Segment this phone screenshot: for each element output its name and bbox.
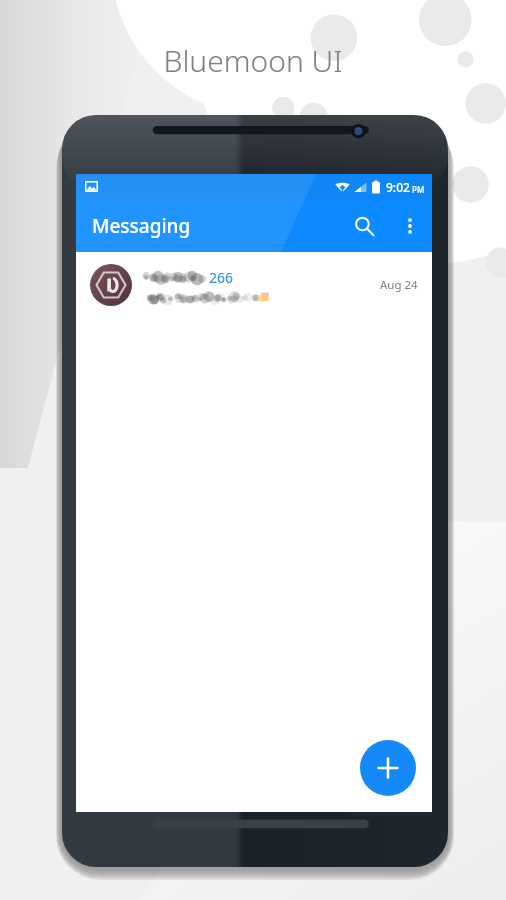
staticText: PM <box>412 184 425 195</box>
button[interactable]: More options <box>388 204 432 248</box>
staticText: Messaging <box>92 213 191 239</box>
staticText: 266 <box>209 268 234 287</box>
button[interactable]: Search <box>340 202 388 250</box>
staticText: Aug 24 <box>380 277 418 293</box>
button[interactable]: New message <box>360 740 416 796</box>
staticText: 9:02 <box>386 179 410 195</box>
staticText: Bluemoon UI <box>163 40 343 81</box>
button[interactable]: 266 <box>76 252 432 318</box>
